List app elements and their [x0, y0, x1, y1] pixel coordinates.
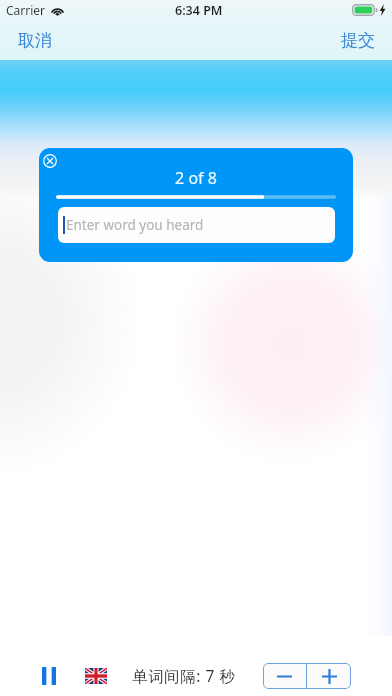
staticText: 单词间隔: 7 秒	[132, 665, 236, 686]
button[interactable]: Pause	[34, 661, 64, 691]
staticText: 2 of 8	[39, 167, 353, 189]
staticText: 提交	[341, 30, 375, 51]
staticText: 取消	[18, 30, 52, 51]
button[interactable]: 提交	[341, 30, 375, 51]
staticText: 6:34 PM	[175, 2, 223, 19]
button[interactable]: Increase interval	[307, 663, 351, 689]
button[interactable]: Decrease interval	[263, 663, 306, 689]
staticText: Carrier	[6, 2, 46, 18]
staticText: Enter word you heard	[66, 216, 204, 234]
button[interactable]: Language English	[85, 668, 107, 684]
button[interactable]: Close	[39, 149, 62, 173]
button[interactable]: 取消	[18, 30, 52, 51]
button[interactable]: Enter word you heard	[58, 207, 335, 243]
